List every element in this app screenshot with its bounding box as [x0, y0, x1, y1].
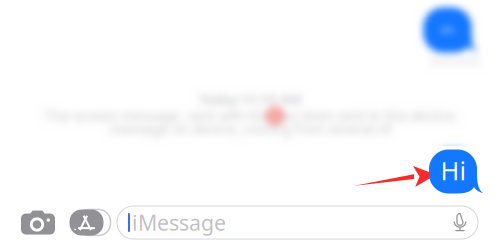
button[interactable]: Take photo [21, 210, 55, 234]
staticText: Delivered [431, 53, 479, 67]
button[interactable]: Message field [117, 206, 478, 239]
button[interactable]: iMessage apps [66, 209, 107, 235]
staticText: iMessage [132, 208, 226, 237]
staticText: Today 11:15 AM [199, 90, 300, 108]
staticText: Hi [440, 154, 466, 187]
staticText: The screen message, sent with this has b… [44, 108, 457, 124]
staticText: message on device, coming from several o… [110, 121, 391, 137]
staticText: •• [440, 18, 454, 42]
